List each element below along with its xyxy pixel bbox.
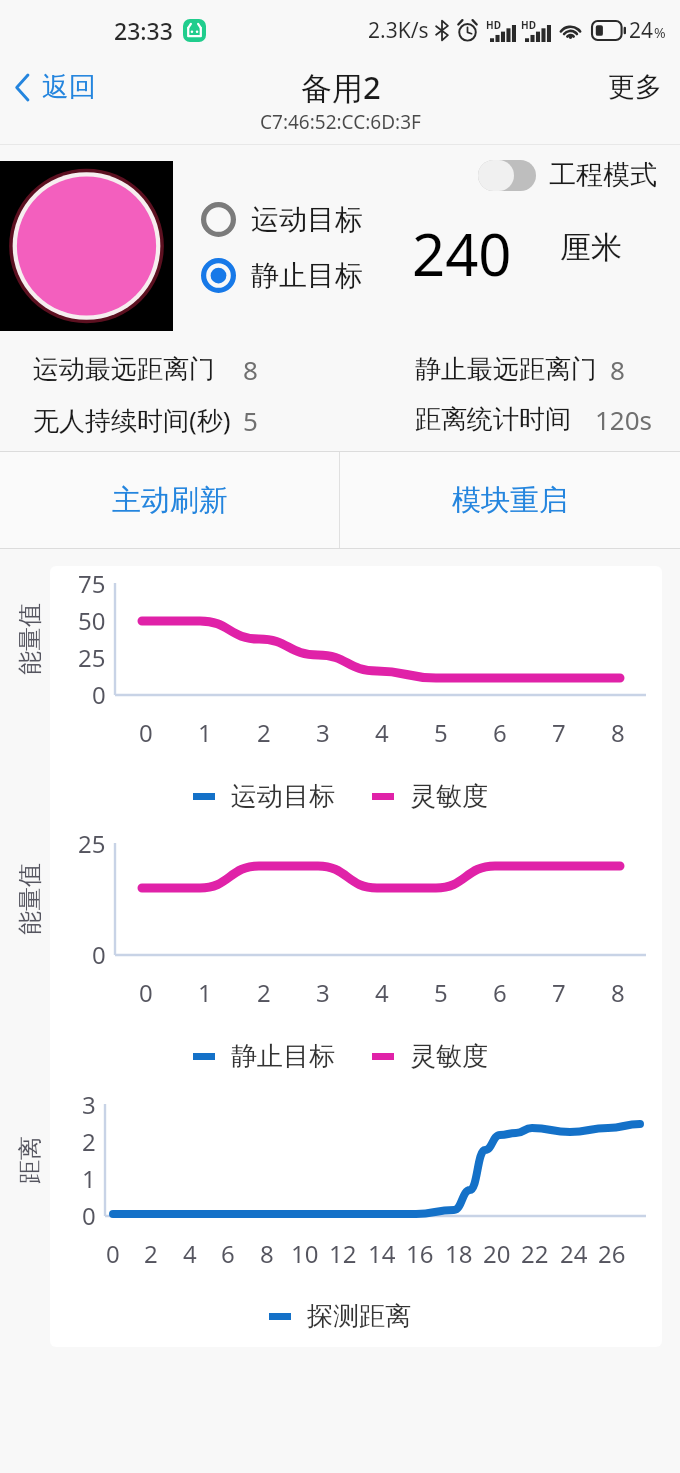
staticText: 12 xyxy=(329,1237,357,1270)
button[interactable]: 更多 xyxy=(588,0,680,114)
staticText: 1 xyxy=(198,976,212,1009)
staticText: 18 xyxy=(445,1237,473,1270)
staticText: 8 xyxy=(243,352,258,387)
staticText: 主动刷新 xyxy=(112,482,228,519)
staticText: 0 xyxy=(82,1199,96,1232)
staticText: 0 xyxy=(92,678,106,711)
staticText: 14 xyxy=(368,1237,396,1270)
button[interactable]: 静止目标 xyxy=(191,248,373,303)
staticText: 4 xyxy=(183,1237,197,1270)
staticText: 工程模式 xyxy=(549,158,657,192)
staticText: 10 xyxy=(291,1237,319,1270)
staticText: 240 xyxy=(412,214,512,293)
staticText: 6 xyxy=(221,1237,235,1270)
staticText: 26 xyxy=(598,1237,626,1270)
staticText: HD xyxy=(486,18,501,32)
staticText: 1 xyxy=(82,1162,96,1195)
staticText: 24 xyxy=(560,1237,588,1270)
staticText: HD xyxy=(521,18,536,32)
staticText: 24 xyxy=(629,16,654,45)
staticText: 2 xyxy=(82,1125,96,1158)
staticText: 静止目标 xyxy=(251,258,363,293)
staticText: 2 xyxy=(257,976,271,1009)
button[interactable]: 返回 xyxy=(0,0,116,114)
staticText: 16 xyxy=(406,1237,434,1270)
staticText: 6 xyxy=(493,976,507,1009)
staticText: 3 xyxy=(316,716,330,749)
staticText: 8 xyxy=(611,976,625,1009)
staticText: 距离 xyxy=(15,1136,45,1184)
staticText: 能量值 xyxy=(15,603,45,675)
staticText: 运动目标 xyxy=(231,780,335,813)
staticText: 1 xyxy=(198,716,212,749)
staticText: 25 xyxy=(78,641,106,674)
staticText: 8 xyxy=(260,1237,274,1270)
staticText: 3 xyxy=(82,1088,96,1121)
staticText: 备用2 xyxy=(301,66,381,108)
staticText: 探测距离 xyxy=(307,1300,411,1333)
staticText: 距离统计时间 xyxy=(415,403,571,436)
button[interactable]: 工程模式 xyxy=(478,160,536,191)
staticText: 0 xyxy=(139,976,153,1009)
button[interactable]: 主动刷新 xyxy=(0,452,339,548)
staticText: 更多 xyxy=(608,70,662,104)
staticText: 无人持续时间(秒) xyxy=(33,402,231,438)
staticText: C7:46:52:CC:6D:3F xyxy=(260,109,421,135)
staticText: 75 xyxy=(78,567,106,600)
staticText: 灵敏度 xyxy=(410,1040,488,1073)
staticText: 50 xyxy=(78,604,106,637)
staticText: 静止最远距离门 xyxy=(415,353,597,386)
staticText: 2.3K/s xyxy=(368,16,429,45)
staticText: 厘米 xyxy=(560,228,622,267)
staticText: 7 xyxy=(552,716,566,749)
staticText: 0 xyxy=(92,938,106,971)
staticText: 运动最远距离门 xyxy=(33,353,215,386)
staticText: 120s xyxy=(595,402,653,437)
staticText: 运动目标 xyxy=(251,202,363,237)
button[interactable]: 运动目标 xyxy=(191,192,373,247)
staticText: 2 xyxy=(257,716,271,749)
button[interactable]: 模块重启 xyxy=(340,452,680,548)
staticText: 8 xyxy=(611,716,625,749)
staticText: 23:33 xyxy=(114,15,173,46)
staticText: 能量值 xyxy=(15,863,45,935)
staticText: 20 xyxy=(483,1237,511,1270)
staticText: 0 xyxy=(106,1237,120,1270)
staticText: 0 xyxy=(139,716,153,749)
staticText: 灵敏度 xyxy=(410,780,488,813)
staticText: 25 xyxy=(78,827,106,860)
staticText: 5 xyxy=(434,976,448,1009)
staticText: 模块重启 xyxy=(452,482,568,519)
staticText: 2 xyxy=(144,1237,158,1270)
staticText: 5 xyxy=(243,403,258,438)
staticText: 8 xyxy=(610,352,625,387)
staticText: % xyxy=(654,23,666,42)
staticText: 6 xyxy=(493,716,507,749)
staticText: 22 xyxy=(521,1237,549,1270)
staticText: 7 xyxy=(552,976,566,1009)
staticText: 返回 xyxy=(42,70,96,104)
staticText: 5 xyxy=(434,716,448,749)
staticText: 3 xyxy=(316,976,330,1009)
staticText: 4 xyxy=(375,716,389,749)
staticText: 4 xyxy=(375,976,389,1009)
staticText: 静止目标 xyxy=(231,1040,335,1073)
